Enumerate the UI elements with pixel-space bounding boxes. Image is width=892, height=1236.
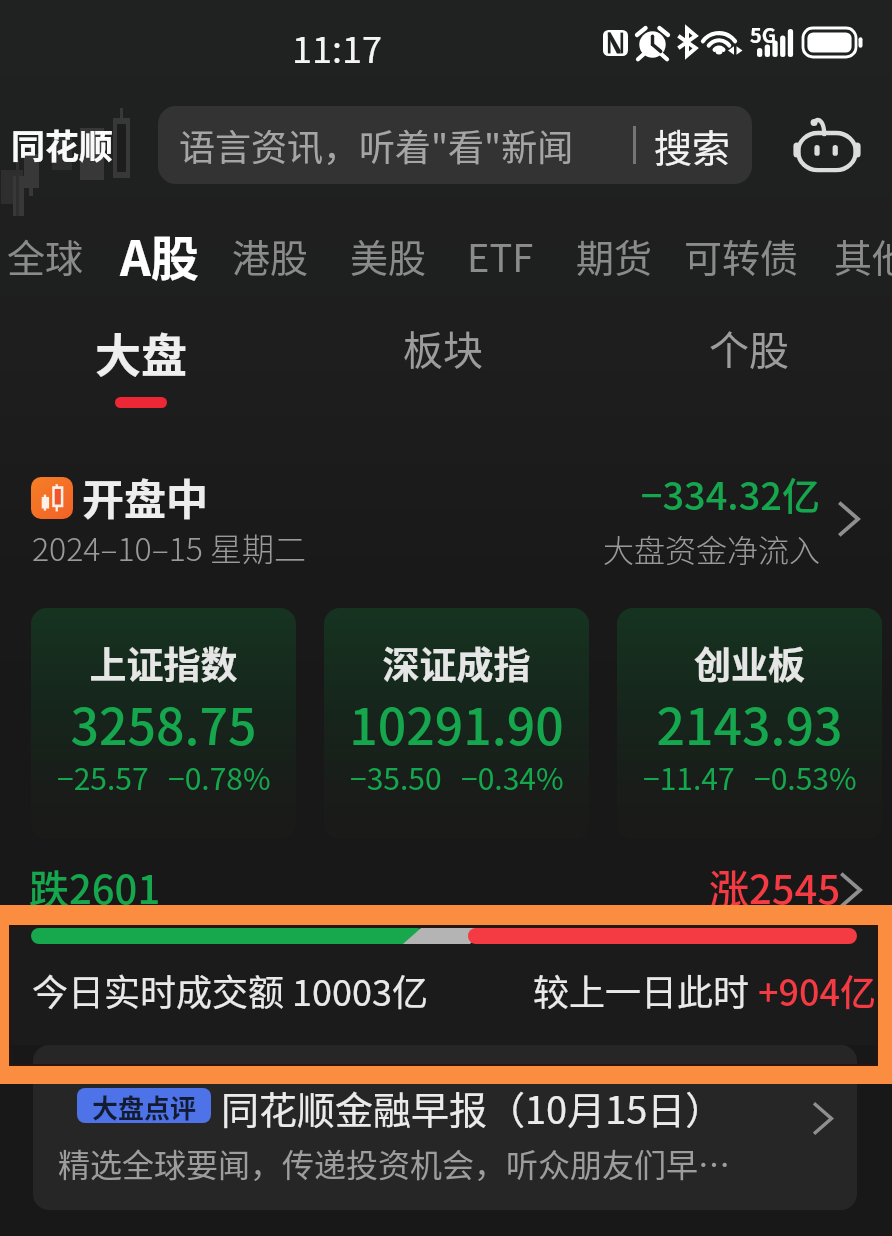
button[interactable]: 跌2601 xyxy=(0,855,892,905)
staticText: 10291.90 xyxy=(324,687,589,759)
staticText: −0.78% xyxy=(168,755,271,798)
staticText: 创业板 xyxy=(617,636,882,690)
staticText: A股 xyxy=(120,220,199,290)
staticText: 同花顺金融早报（10月15日） xyxy=(221,1080,724,1135)
staticText: 2024–10–15 星期二 xyxy=(32,524,307,570)
button[interactable]: ETF xyxy=(455,215,546,295)
staticText: 其他 xyxy=(834,228,892,283)
staticText: 涨2545 xyxy=(709,858,841,908)
staticText: −0.53% xyxy=(754,755,857,798)
staticText: 3258.75 xyxy=(31,687,296,759)
staticText: 大盘点评 xyxy=(92,1088,197,1123)
staticText: 大盘 xyxy=(95,319,187,386)
button[interactable]: 语言资讯，听着"看"新闻 xyxy=(158,106,752,184)
button[interactable]: 板块 xyxy=(343,306,543,410)
staticText: 可转债 xyxy=(684,228,799,283)
button[interactable]: 同花顺 xyxy=(0,88,150,200)
staticText: 语言资讯，听着"看"新闻 xyxy=(179,119,574,171)
button[interactable]: 上证指数 xyxy=(31,608,296,839)
staticText: 跌2601 xyxy=(29,858,161,908)
staticText: 个股 xyxy=(709,319,789,377)
button[interactable]: 开盘中 xyxy=(0,452,892,580)
staticText: 大盘资金净流入 xyxy=(400,526,820,571)
button[interactable]: 全球 xyxy=(0,215,96,295)
button[interactable]: 期货 xyxy=(564,215,665,295)
button[interactable]: 其他 xyxy=(822,215,892,295)
button[interactable]: 大盘点评 xyxy=(33,1045,857,1210)
button[interactable]: 深证成指 xyxy=(324,608,589,839)
staticText: 期货 xyxy=(576,228,653,283)
staticText: 深证成指 xyxy=(324,636,589,690)
staticText: 今日实时成交额 10003亿 xyxy=(32,964,428,1016)
staticText: ETF xyxy=(467,228,534,283)
button[interactable]: AI 助手 xyxy=(786,110,868,180)
staticText: 11:17 xyxy=(292,21,382,73)
button[interactable]: 个股 xyxy=(649,306,849,410)
staticText: −334.32亿 xyxy=(400,466,820,521)
staticText: 开盘中 xyxy=(82,466,209,527)
staticText: 港股 xyxy=(232,228,309,283)
staticText: 5G xyxy=(750,20,777,49)
button[interactable]: 今日实时成交额 10003亿 xyxy=(10,926,877,1045)
button[interactable]: 港股 xyxy=(220,215,321,295)
staticText: −0.34% xyxy=(461,755,564,798)
button[interactable]: 美股 xyxy=(338,215,439,295)
staticText: 较上一日此时 xyxy=(533,964,758,1016)
staticText: 全球 xyxy=(7,228,84,283)
staticText: −25.57 xyxy=(57,755,149,798)
button[interactable]: 创业板 xyxy=(617,608,882,839)
staticText: 2143.93 xyxy=(617,687,882,759)
staticText: 同花顺 xyxy=(11,120,113,169)
staticText: 上证指数 xyxy=(31,636,296,690)
staticText: 精选全球要闻，传递投资机会，听众朋友们早… xyxy=(58,1140,731,1186)
staticText: 搜索 xyxy=(654,118,731,173)
button[interactable]: 可转债 xyxy=(672,215,811,295)
staticText: +904亿 xyxy=(758,964,877,1016)
staticText: 板块 xyxy=(403,319,483,377)
staticText: −11.47 xyxy=(643,755,735,798)
button[interactable]: A股 xyxy=(108,215,211,295)
staticText: 美股 xyxy=(350,228,427,283)
staticText: −35.50 xyxy=(350,755,442,798)
button[interactable]: 大盘 xyxy=(41,306,241,410)
